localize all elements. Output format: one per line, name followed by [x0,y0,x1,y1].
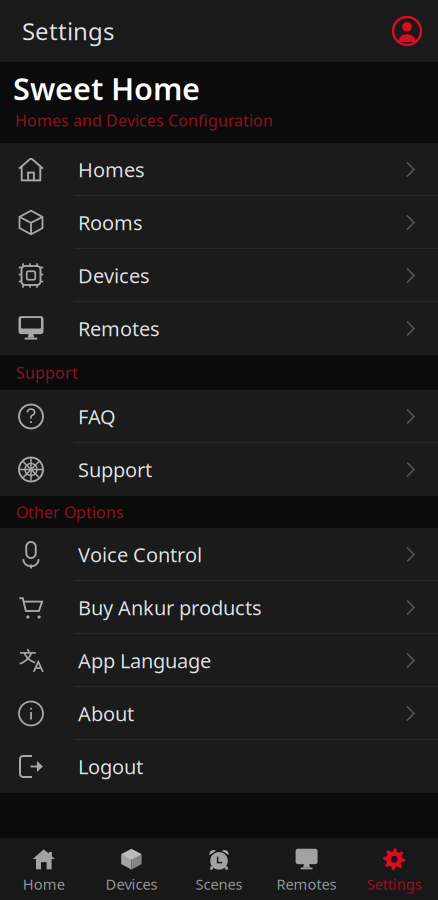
button[interactable]: Buy Ankur products [0,581,438,634]
button[interactable]: About [0,687,438,740]
button[interactable]: Homes [0,143,438,196]
staticText: Settings [22,15,114,47]
staticText: Devices [78,262,150,289]
staticText: Devices [105,874,157,894]
staticText: Settings [367,874,422,894]
staticText: Homes [78,156,145,183]
button[interactable]: Voice Control [0,528,438,581]
staticText: Scenes [195,874,242,894]
button[interactable]: Rooms [0,196,438,249]
staticText: App Language [78,647,211,674]
staticText: About [78,700,134,727]
button[interactable]: Account [392,8,438,54]
button[interactable]: Remotes [0,302,438,355]
button[interactable]: Settings [350,838,438,900]
button[interactable]: Devices [0,249,438,302]
staticText: Sweet Home [13,68,200,109]
staticText: Support [16,362,78,383]
button[interactable]: Support [0,443,438,496]
button[interactable]: App Language [0,634,438,687]
staticText: FAQ [78,403,116,430]
button[interactable]: Remotes [263,838,350,900]
staticText: Homes and Devices Configuration [15,110,273,131]
staticText: Remotes [277,874,337,894]
staticText: Voice Control [78,541,202,568]
staticText: Home [23,874,65,894]
staticText: Support [78,456,152,483]
button[interactable]: Logout [0,740,438,793]
button[interactable]: Scenes [175,838,263,900]
button[interactable]: FAQ [0,390,438,443]
staticText: Remotes [78,315,160,342]
button[interactable]: Devices [88,838,175,900]
staticText: Rooms [78,209,143,236]
staticText: Other Options [16,501,124,523]
staticText: Buy Ankur products [78,594,262,621]
button[interactable]: Home [0,838,88,900]
staticText: Logout [78,753,143,780]
